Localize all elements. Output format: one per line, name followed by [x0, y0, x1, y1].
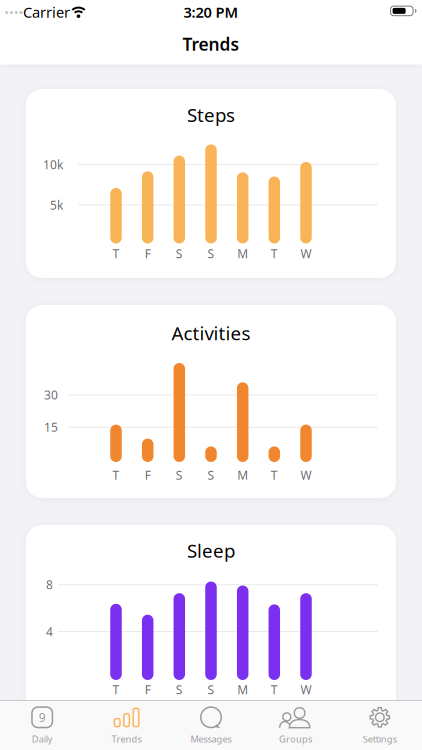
- button[interactable]: Messages: [169, 701, 253, 749]
- staticText: M: [237, 682, 248, 697]
- staticText: S: [176, 682, 183, 697]
- staticText: W: [300, 682, 311, 697]
- staticText: 9: [39, 709, 46, 725]
- staticText: Groups: [279, 733, 312, 745]
- staticText: Steps: [187, 102, 235, 127]
- staticText: S: [207, 682, 214, 697]
- staticText: Messages: [190, 733, 231, 745]
- staticText: T: [271, 245, 278, 261]
- staticText: 15: [44, 419, 58, 435]
- staticText: 8: [46, 577, 53, 593]
- staticText: M: [237, 467, 248, 483]
- staticText: F: [145, 467, 151, 483]
- staticText: W: [300, 245, 311, 261]
- button[interactable]: Groups: [253, 701, 337, 749]
- staticText: Settings: [363, 733, 397, 745]
- staticText: Daily: [32, 733, 53, 745]
- staticText: Trends: [182, 32, 239, 55]
- staticText: Sleep: [187, 538, 235, 563]
- staticText: S: [207, 245, 214, 261]
- staticText: T: [271, 682, 278, 697]
- staticText: S: [207, 467, 214, 483]
- staticText: S: [176, 467, 183, 483]
- button[interactable]: 9: [0, 701, 84, 749]
- staticText: Activities: [171, 321, 250, 345]
- staticText: F: [145, 245, 151, 261]
- button[interactable]: Settings: [338, 701, 422, 749]
- staticText: M: [237, 245, 248, 261]
- staticText: S: [176, 245, 183, 261]
- staticText: Trends: [112, 733, 142, 745]
- staticText: Carrier: [23, 2, 70, 22]
- staticText: T: [112, 245, 119, 261]
- staticText: W: [300, 467, 311, 483]
- staticText: F: [145, 682, 151, 697]
- button[interactable]: Trends: [85, 701, 169, 749]
- staticText: T: [271, 467, 278, 483]
- staticText: 5k: [50, 197, 63, 213]
- staticText: T: [112, 467, 119, 483]
- staticText: 30: [44, 387, 58, 403]
- staticText: 3:20 PM: [183, 2, 238, 22]
- staticText: T: [112, 682, 119, 697]
- staticText: 4: [46, 623, 53, 639]
- staticText: 10k: [43, 156, 63, 172]
